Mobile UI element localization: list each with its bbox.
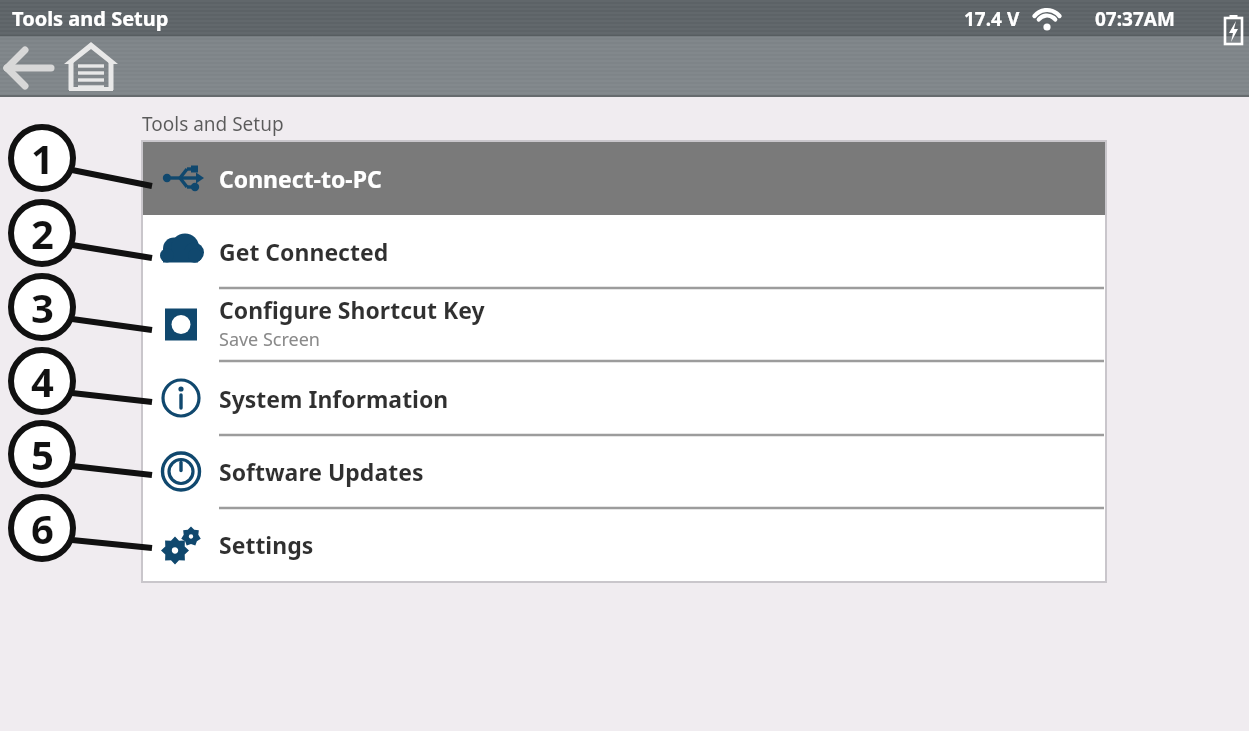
staticText: 5 [31,427,54,481]
staticText: 2 [31,206,54,260]
staticText: Tools and Setup [12,5,169,32]
staticText: Configure Shortcut Key [219,294,485,325]
staticText: System Information [219,383,449,414]
staticText: Connect-to-PC [219,163,382,194]
staticText: Get Connected [219,236,389,267]
staticText: 17.4 V [964,6,1020,32]
button[interactable]: Configure Shortcut Key [142,288,1106,361]
button[interactable]: Home [66,44,118,92]
button[interactable]: Settings [142,508,1106,581]
staticText: 6 [31,501,54,555]
staticText: Save Screen [219,327,320,352]
button[interactable]: Get Connected [142,215,1106,288]
button[interactable]: System Information [142,361,1106,435]
staticText: Settings [219,529,314,560]
staticText: 07:37AM [1095,6,1175,32]
staticText: 4 [31,354,54,408]
staticText: Tools and Setup [142,111,284,137]
button[interactable]: Connect-to-PC [142,141,1106,215]
staticText: 3 [31,280,54,334]
staticText: 1 [31,131,54,185]
button[interactable]: Back [4,44,54,92]
staticText: Software Updates [219,456,424,487]
button[interactable]: Software Updates [142,435,1106,508]
